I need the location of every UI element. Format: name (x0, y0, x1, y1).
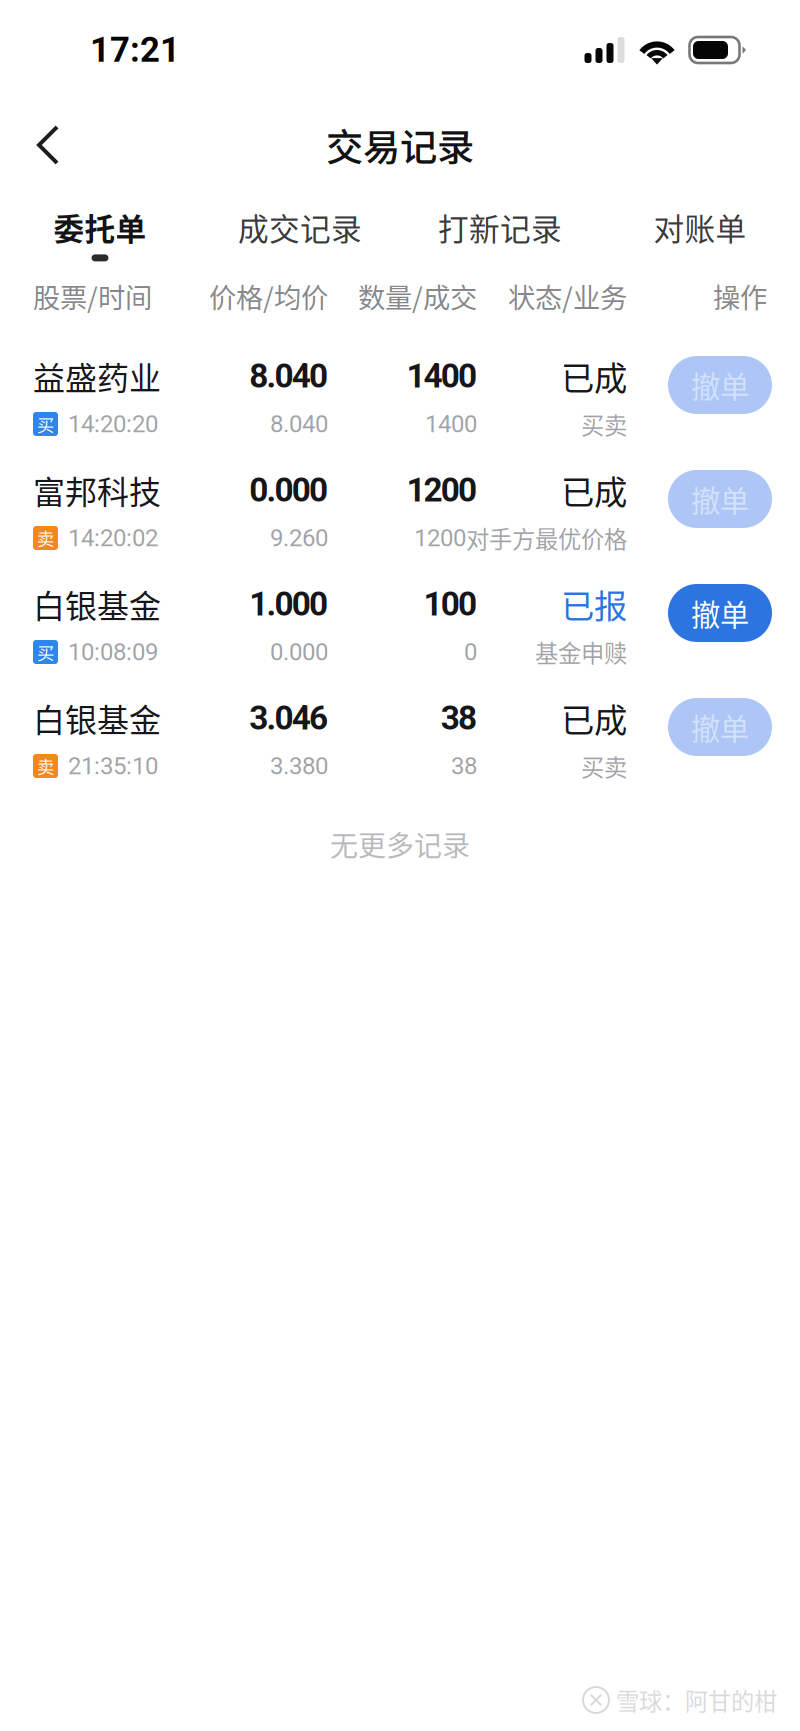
staticText: 撤单 (691, 706, 749, 748)
staticText: 状态/业务 (508, 276, 627, 316)
staticText: 买 (37, 411, 54, 437)
staticText: 委托单 (53, 205, 146, 249)
staticText: 1200 (414, 524, 466, 552)
staticText: 0 (464, 638, 477, 666)
staticText: 撤单 (691, 478, 749, 520)
staticText: 白银基金 (33, 581, 161, 627)
staticText: 已成 (561, 466, 627, 514)
button[interactable]: 撤单 (668, 356, 772, 414)
staticText: 数量/成交 (358, 276, 477, 316)
staticText: 对手方最优价格 (466, 521, 627, 555)
staticText: 益盛药业 (33, 353, 161, 399)
staticText: 操作 (713, 276, 767, 316)
staticText: 买卖 (581, 407, 627, 441)
staticText: 3.046 (249, 698, 328, 738)
button[interactable]: 打新记录 (400, 190, 600, 270)
staticText: 撤单 (691, 364, 749, 406)
staticText: 卖 (37, 525, 54, 551)
staticText: 100 (424, 584, 477, 624)
staticText: 交易记录 (326, 118, 474, 172)
button[interactable]: Back (33, 106, 85, 184)
staticText: 10:08:09 (68, 638, 158, 666)
staticText: 38 (441, 698, 477, 738)
staticText: 撤单 (691, 592, 749, 634)
staticText: 1400 (425, 410, 477, 438)
staticText: 21:35:10 (68, 752, 158, 780)
staticText: 已报 (561, 580, 627, 628)
staticText: 1400 (406, 356, 477, 396)
staticText: 股票/时间 (33, 276, 152, 316)
staticText: 8.040 (270, 410, 328, 438)
staticText: 9.260 (270, 524, 328, 552)
staticText: 价格/均价 (209, 276, 328, 316)
staticText: 卖 (37, 753, 54, 779)
staticText: 0.000 (249, 470, 328, 510)
button[interactable]: 对账单 (600, 190, 800, 270)
button[interactable]: 委托单 (0, 190, 200, 270)
button[interactable]: 撤单 (668, 698, 772, 756)
button[interactable]: 撤单 (668, 584, 772, 642)
staticText: 3.380 (270, 752, 328, 780)
staticText: 8.040 (249, 356, 328, 396)
staticText: 17:21 (90, 30, 180, 70)
button[interactable]: 成交记录 (200, 190, 400, 270)
staticText: 0.000 (270, 638, 328, 666)
staticText: 14:20:20 (68, 410, 158, 438)
staticText: 雪球：阿甘的柑 (616, 1683, 777, 1717)
staticText: 1.000 (249, 584, 328, 624)
staticText: 打新记录 (438, 205, 562, 249)
staticText: 买 (37, 639, 54, 665)
staticText: 富邦科技 (33, 467, 161, 513)
staticText: 已成 (561, 352, 627, 400)
staticText: 无更多记录 (330, 824, 470, 864)
staticText: 白银基金 (33, 695, 161, 741)
staticText: 14:20:02 (68, 524, 158, 552)
staticText: 已成 (561, 694, 627, 742)
staticText: 成交记录 (238, 205, 362, 249)
staticText: 基金申赎 (535, 635, 627, 669)
staticText: 1200 (406, 470, 477, 510)
staticText: 买卖 (581, 749, 627, 783)
staticText: 对账单 (653, 205, 746, 249)
staticText: 38 (451, 752, 477, 780)
button[interactable]: 撤单 (668, 470, 772, 528)
